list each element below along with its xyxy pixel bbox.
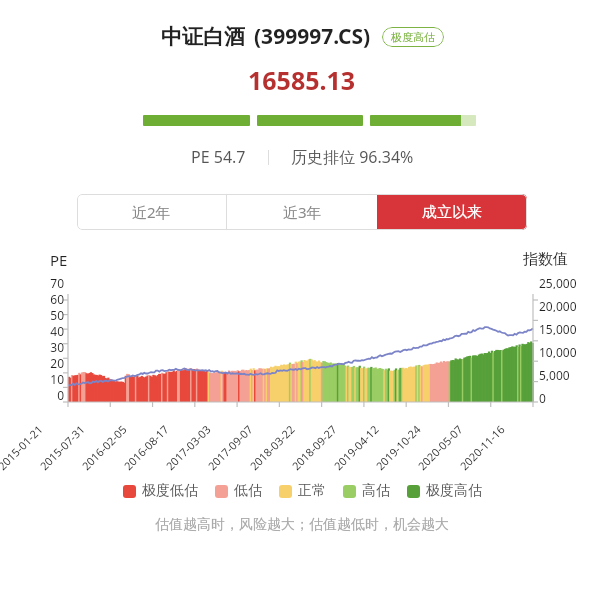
staticText: 估值越高时，风险越大；估值越低时，机会越大 <box>155 516 449 534</box>
staticText: 40 <box>50 323 64 337</box>
staticText: 成立以来 <box>422 203 482 222</box>
button[interactable]: 近3年 <box>227 194 377 230</box>
staticText: 25,000 <box>539 275 577 289</box>
staticText: 2018-09-27 <box>288 421 340 473</box>
staticText: (399997.CS) <box>254 22 371 51</box>
button[interactable]: 极度高估 <box>407 482 482 500</box>
staticText: 指数值 <box>523 250 568 269</box>
staticText: 0 <box>57 387 64 401</box>
staticText: PE <box>50 250 68 270</box>
staticText: 5,000 <box>539 367 570 381</box>
staticText: 2017-09-07 <box>204 421 256 473</box>
button[interactable]: 低估 <box>215 482 262 500</box>
button[interactable]: 极度高估 <box>382 27 444 47</box>
button[interactable]: 极度低估 <box>123 482 198 500</box>
staticText: 10 <box>50 371 64 385</box>
button[interactable]: 正常 <box>279 482 326 500</box>
staticText: 低估 <box>234 482 262 500</box>
staticText: 20,000 <box>539 298 577 312</box>
button[interactable]: 近2年 <box>77 194 226 230</box>
staticText: 2020-11-16 <box>456 421 508 473</box>
staticText: 30 <box>50 339 64 353</box>
staticText: PE 54.7 <box>191 146 246 168</box>
staticText: 2019-10-24 <box>372 421 424 473</box>
staticText: 2019-04-12 <box>330 421 382 473</box>
staticText: 10,000 <box>539 344 577 358</box>
staticText: 正常 <box>298 482 326 500</box>
staticText: 近2年 <box>132 202 171 222</box>
staticText: 极度高估 <box>391 30 435 44</box>
staticText: 2020-05-07 <box>414 421 466 473</box>
staticText: 极度低估 <box>142 482 198 500</box>
button[interactable]: 高估 <box>343 482 390 500</box>
staticText: 2016-08-17 <box>120 421 172 473</box>
button[interactable]: 成立以来 <box>377 194 527 230</box>
staticText: 中证白酒 <box>161 24 245 50</box>
staticText: 70 <box>50 275 64 289</box>
staticText: 历史排位 96.34% <box>291 146 414 168</box>
staticText: 2018-03-22 <box>246 421 298 473</box>
staticText: 2015-07-31 <box>36 421 88 473</box>
staticText: 0 <box>539 390 546 404</box>
staticText: 近3年 <box>283 202 322 222</box>
staticText: 16585.13 <box>248 63 356 97</box>
staticText: 60 <box>50 291 64 305</box>
staticText: 15,000 <box>539 321 577 335</box>
staticText: 50 <box>50 307 64 321</box>
staticText: 高估 <box>362 482 390 500</box>
staticText: 2016-02-05 <box>78 421 130 473</box>
staticText: 2017-03-03 <box>162 421 214 473</box>
staticText: 2015-01-21 <box>0 421 46 473</box>
staticText: 极度高估 <box>426 482 482 500</box>
staticText: 20 <box>50 355 64 369</box>
